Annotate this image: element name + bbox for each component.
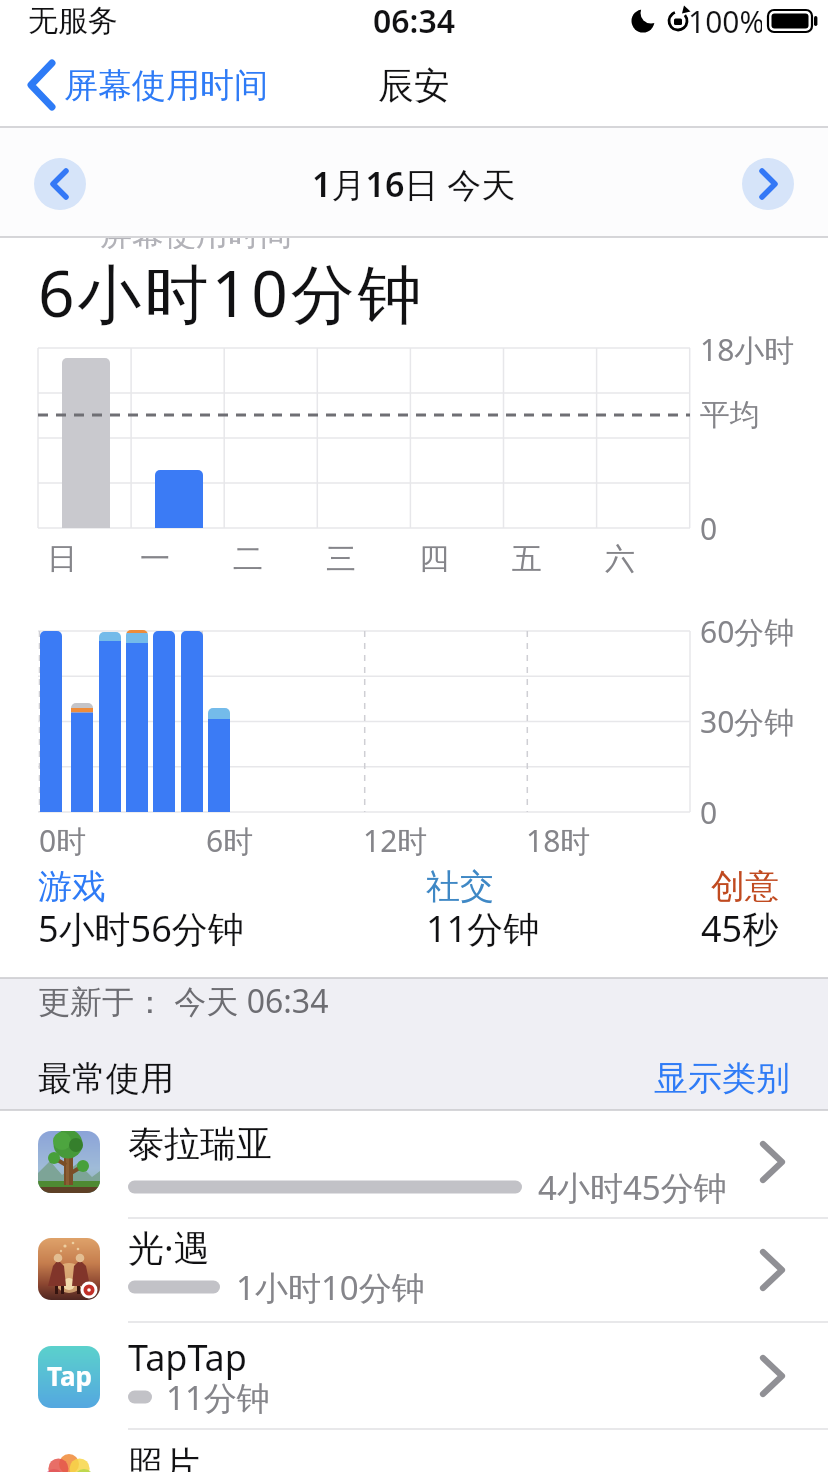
staticText: 100% [688, 1, 762, 42]
staticText: 18时 [526, 820, 591, 861]
staticText: 一 [140, 540, 170, 578]
staticText: 屏幕使用时间 [64, 64, 268, 107]
button[interactable] [0, 1110, 828, 1218]
staticText: 30分钟 [700, 701, 795, 742]
staticText: Tap [47, 1358, 92, 1393]
button[interactable] [742, 158, 794, 210]
staticText: 无服务 [28, 2, 118, 40]
staticText: 社交 [426, 865, 494, 908]
staticText: 11分钟 [166, 1375, 270, 1420]
staticText: 更新于： 今天 06:34 [38, 979, 329, 1023]
staticText: 60分钟 [700, 611, 795, 652]
staticText: 5小时56分钟 [38, 904, 244, 953]
staticText: 18小时 [700, 329, 795, 370]
button[interactable] [0, 1218, 828, 1322]
staticText: 二 [233, 540, 263, 578]
staticText: 45秒 [701, 904, 779, 953]
staticText: 日 [47, 540, 77, 578]
staticText: 06:34 [373, 0, 456, 43]
staticText: 1小时10分钟 [236, 1265, 425, 1310]
staticText: 6时 [206, 820, 254, 861]
staticText: 五 [512, 540, 542, 578]
staticText: 4小时45分钟 [538, 1165, 727, 1210]
staticText: 最常使用 [38, 1057, 174, 1100]
staticText: 6小时10分钟 [38, 249, 425, 336]
staticText: 0时 [39, 820, 87, 861]
staticText: 三 [326, 540, 356, 578]
button[interactable] [0, 1322, 828, 1429]
staticText: 光·遇 [128, 1223, 210, 1272]
button[interactable]: 显示类别 [590, 1044, 790, 1112]
button[interactable] [34, 158, 86, 210]
staticText: 创意 [711, 865, 779, 908]
staticText: 照片 [128, 1442, 200, 1472]
staticText: 0 [700, 508, 718, 549]
staticText: 11分钟 [426, 904, 540, 953]
staticText: TapTap [128, 1333, 247, 1382]
staticText: 12时 [363, 820, 428, 861]
staticText: 六 [605, 540, 635, 578]
staticText: 平均 [700, 396, 760, 434]
staticText: 游戏 [38, 865, 106, 908]
staticText: 显示类别 [654, 1057, 790, 1100]
staticText: 辰安 [378, 63, 450, 108]
staticText: 四 [419, 540, 449, 578]
staticText: 泰拉瑞亚 [128, 1121, 272, 1166]
staticText: 1月16日 今天 [312, 161, 516, 207]
staticText: 屏幕使用时间 [100, 238, 292, 249]
staticText: 0 [700, 792, 718, 833]
button[interactable]: 屏幕使用时间 [64, 51, 564, 119]
